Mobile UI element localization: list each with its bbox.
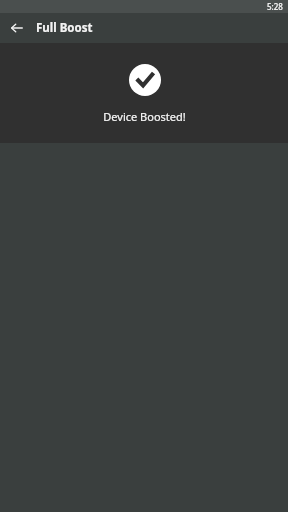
staticText: 5:28 bbox=[267, 1, 283, 12]
staticText: Device Boosted! bbox=[103, 109, 186, 124]
staticText: Full Boost bbox=[36, 20, 93, 36]
button[interactable]: Back bbox=[6, 17, 28, 39]
